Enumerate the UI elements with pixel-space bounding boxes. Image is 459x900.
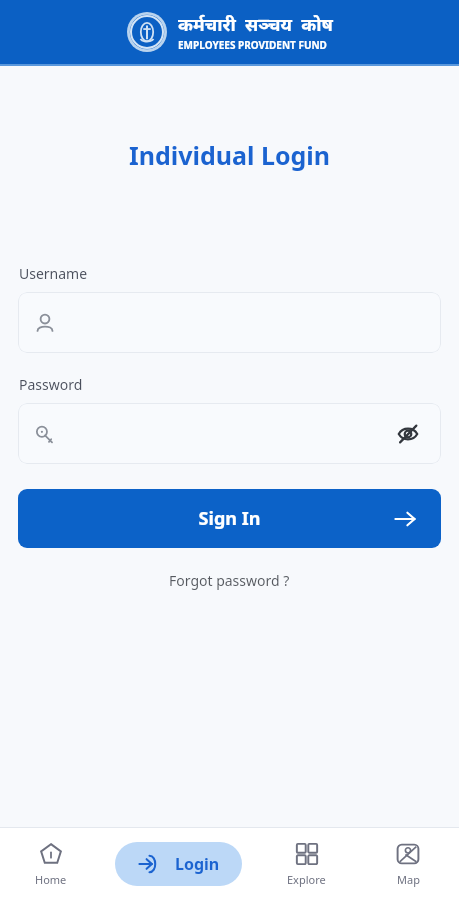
staticText: Forgot password ? <box>169 571 290 590</box>
button[interactable]: Login <box>115 842 242 886</box>
staticText: Home <box>35 872 67 887</box>
staticText: Map <box>397 872 420 887</box>
staticText: Login <box>175 853 220 875</box>
button[interactable]: Forgot password ? <box>163 568 296 593</box>
staticText: Password <box>19 375 83 394</box>
staticText: कर्मचारी सञ्चय कोष <box>178 12 333 37</box>
staticText: EMPLOYEES PROVIDENT FUND <box>178 38 327 52</box>
button[interactable]: Explore <box>275 837 338 891</box>
staticText: Sign In <box>18 506 441 531</box>
button[interactable]: Sign In <box>18 489 441 548</box>
staticText: Username <box>19 264 88 283</box>
staticText: Explore <box>287 872 326 887</box>
button[interactable] <box>18 292 441 353</box>
staticText: Individual Login <box>0 138 459 172</box>
button[interactable]: Map <box>383 837 433 891</box>
button[interactable]: Home <box>23 837 79 891</box>
button[interactable]: Show password <box>18 403 441 464</box>
button[interactable]: Show password <box>391 417 425 451</box>
